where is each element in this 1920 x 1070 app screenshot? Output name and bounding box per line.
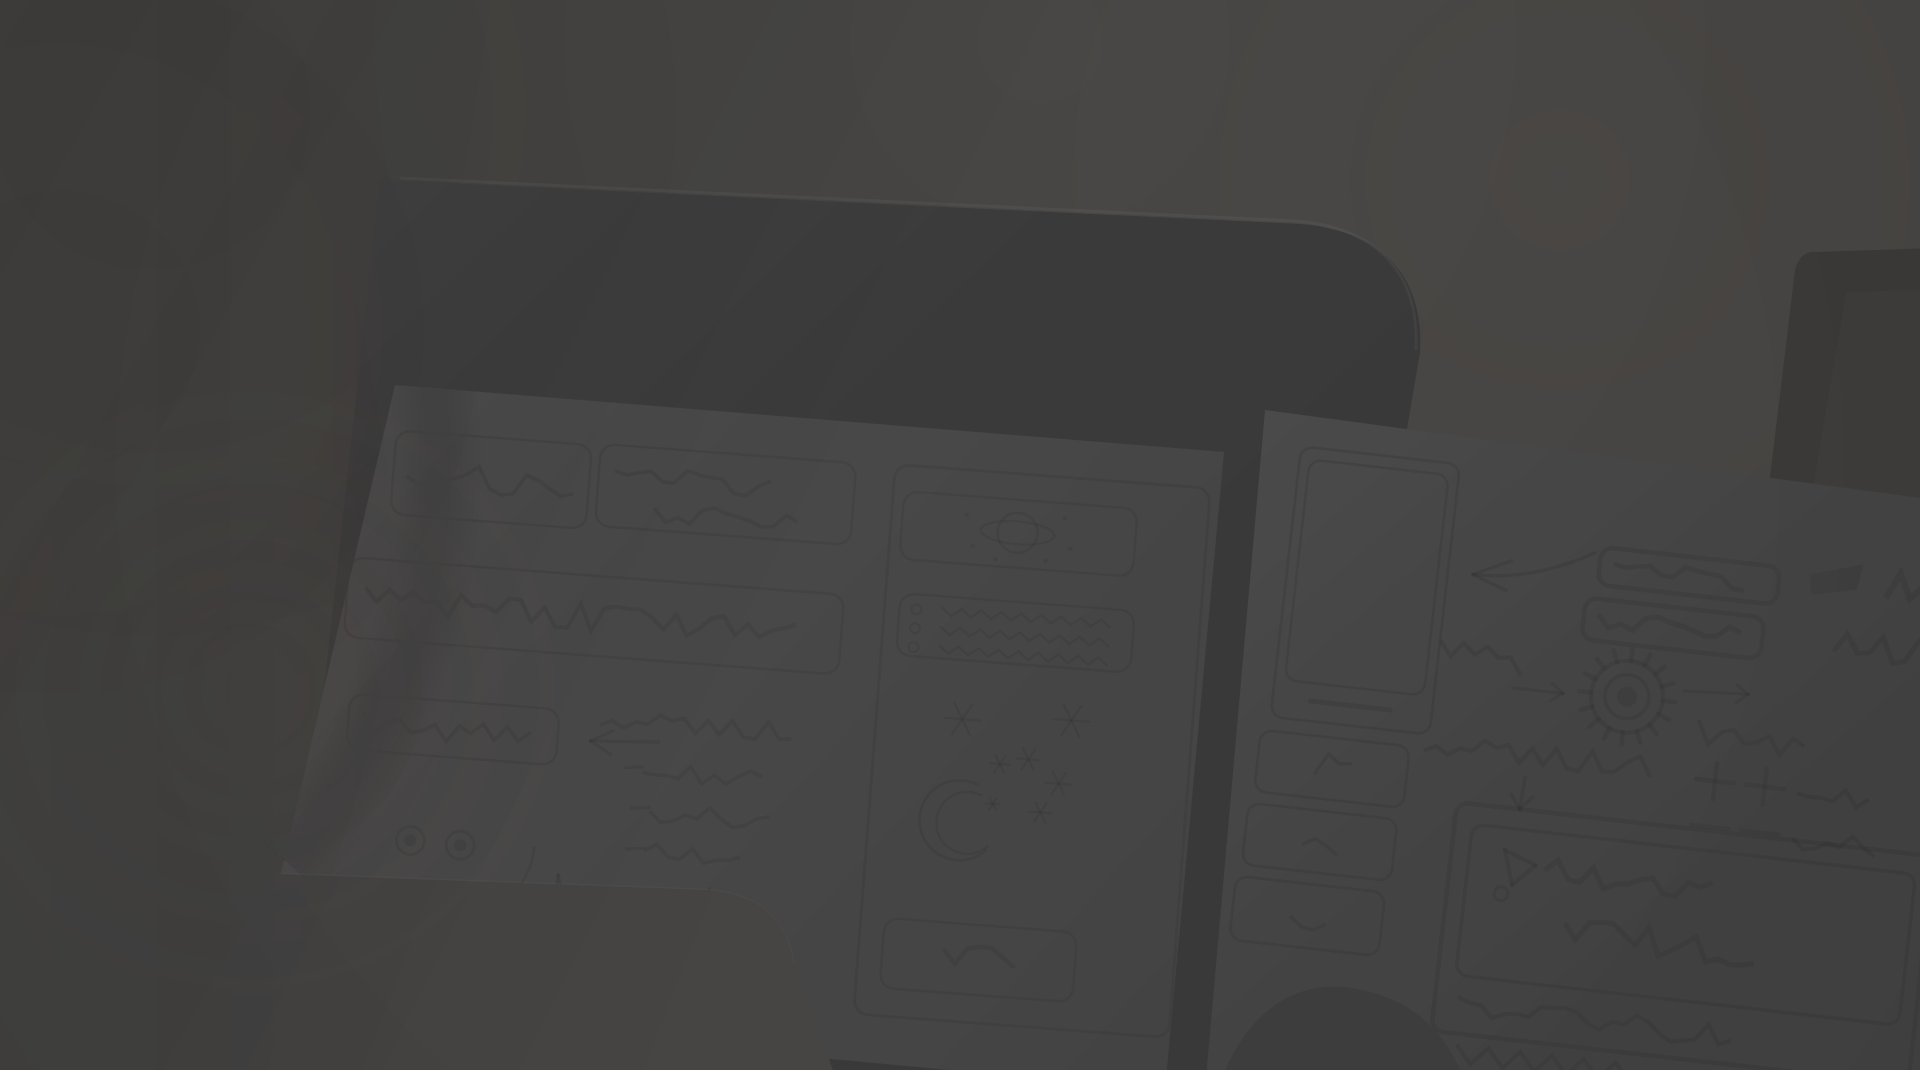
button[interactable]: Design workspace background xyxy=(0,0,1920,1070)
